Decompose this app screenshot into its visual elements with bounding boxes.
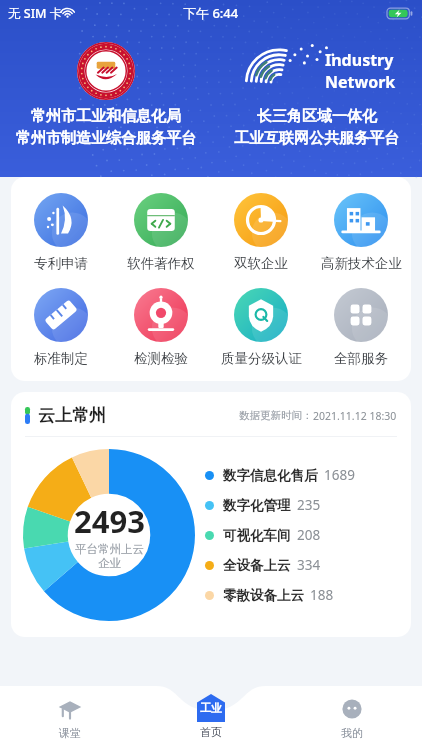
staticText: 188 xyxy=(310,586,334,604)
staticText: 软件著作权 xyxy=(127,255,195,272)
button[interactable]: 软件著作权 xyxy=(111,193,211,272)
button[interactable]: 检测检验 xyxy=(111,288,211,367)
staticText: 标准制定 xyxy=(34,350,88,367)
staticText: 常州市制造业综合服务平台 xyxy=(16,129,196,148)
staticText: 高新技术企业 xyxy=(321,255,402,272)
staticText: 下午 6:44 xyxy=(183,4,239,22)
other: 我的 xyxy=(340,697,364,721)
staticText: 可视化车间 xyxy=(223,527,291,544)
staticText: 课堂 xyxy=(59,726,81,740)
other: 课堂 xyxy=(58,697,82,721)
staticText: 2021.11.12 18:30 xyxy=(313,409,397,423)
staticText: 2493 xyxy=(74,500,145,542)
button[interactable]: 双软企业 xyxy=(211,193,311,272)
staticText: 无 SIM 卡 xyxy=(8,5,63,22)
button[interactable]: 课堂 xyxy=(0,686,140,750)
staticText: 专利申请 xyxy=(34,255,88,272)
staticText: 我的 xyxy=(341,726,363,740)
button[interactable]: 质量分级认证 xyxy=(211,288,311,367)
staticText: 全设备上云 xyxy=(223,557,291,574)
staticText: 工业 xyxy=(200,701,222,715)
button[interactable]: 标准制定 xyxy=(11,288,111,367)
button[interactable]: 全部服务 xyxy=(311,288,411,367)
staticText: 企业 xyxy=(98,556,121,570)
staticText: 零散设备上云 xyxy=(223,587,304,604)
staticText: 云上常州 xyxy=(38,405,106,426)
staticText: 235 xyxy=(297,496,321,514)
staticText: 长三角区域一体化 xyxy=(257,107,377,126)
staticText: 1689 xyxy=(324,466,355,484)
staticText: 208 xyxy=(297,526,321,544)
staticText: 数字信息化售后 xyxy=(223,467,318,484)
staticText: 常州市工业和信息化局 xyxy=(31,107,181,126)
staticText: 数字化管理 xyxy=(223,497,291,514)
staticText: 双软企业 xyxy=(234,255,288,272)
staticText: Network xyxy=(325,71,396,93)
staticText: 334 xyxy=(297,556,321,574)
staticText: 平台常州上云 xyxy=(75,542,144,556)
staticText: 数据更新时间： xyxy=(239,409,313,422)
other: 首页 xyxy=(197,694,225,722)
button[interactable]: 首页 xyxy=(140,686,281,750)
staticText: Industry xyxy=(325,49,394,71)
staticText: 全部服务 xyxy=(334,350,388,367)
button[interactable]: 高新技术企业 xyxy=(311,193,411,272)
staticText: 工业互联网公共服务平台 xyxy=(234,129,399,148)
staticText: 质量分级认证 xyxy=(221,350,302,367)
button[interactable]: 专利申请 xyxy=(11,193,111,272)
staticText: 检测检验 xyxy=(134,350,188,367)
staticText: 首页 xyxy=(200,725,222,739)
button[interactable]: 我的 xyxy=(281,686,422,750)
